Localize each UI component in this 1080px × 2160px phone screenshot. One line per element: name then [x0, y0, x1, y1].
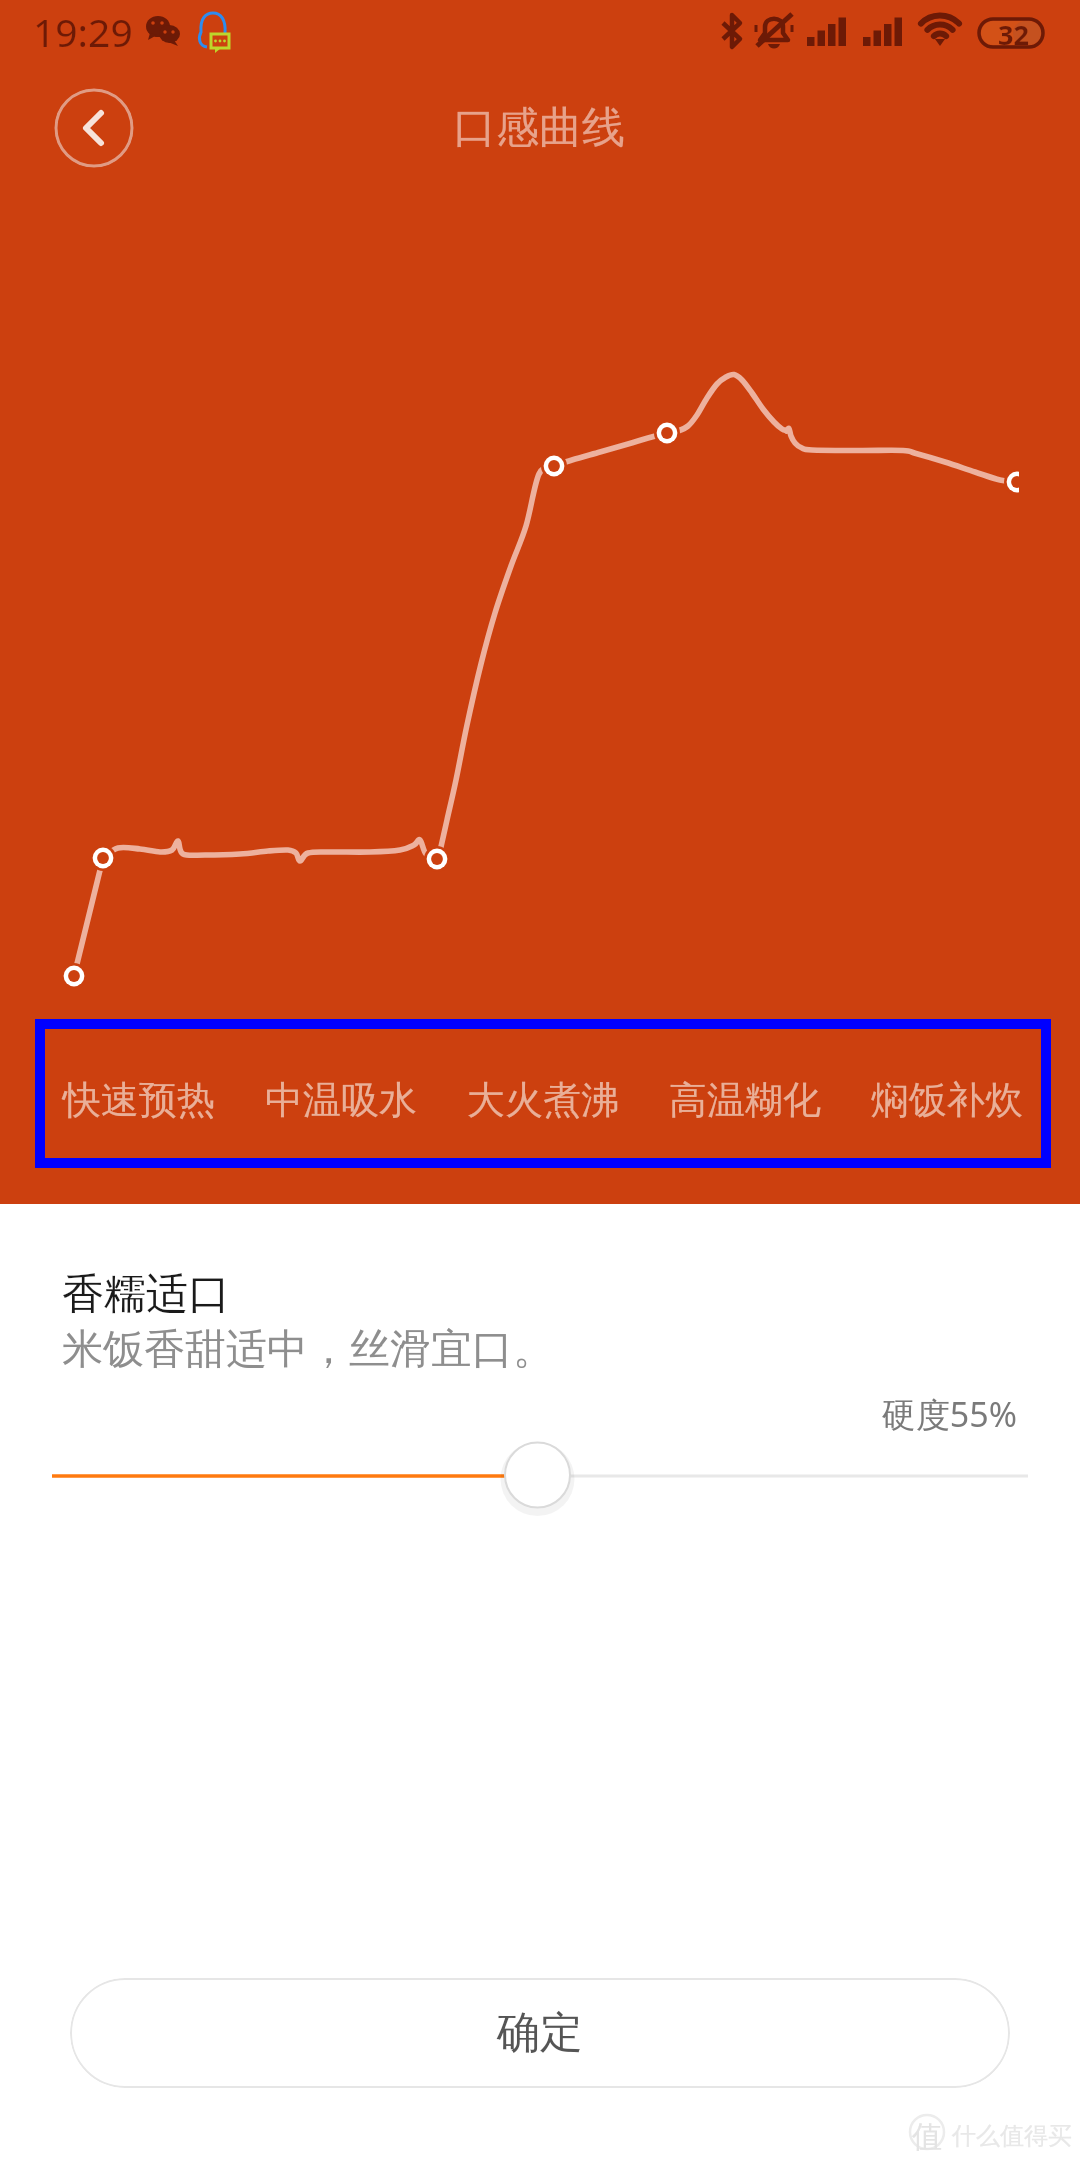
staticText: 什么值得买 — [952, 2121, 1072, 2151]
staticText: 值 — [912, 2118, 942, 2156]
staticText: 19:29 — [33, 5, 133, 58]
staticText: 确定 — [497, 2006, 583, 2060]
button[interactable]: 大火煮沸 — [442, 1072, 644, 1128]
staticText: 32 — [998, 16, 1029, 53]
staticText: 中温吸水 — [265, 1076, 417, 1124]
staticText: 高温糊化 — [669, 1076, 821, 1124]
button[interactable]: Hardness slider — [0, 1435, 1080, 1515]
button[interactable]: 确定 — [70, 1978, 1010, 2088]
staticText: 米饭香甜适中，丝滑宜口。 — [62, 1324, 554, 1376]
staticText: 香糯适口 — [62, 1268, 230, 1321]
staticText: 焖饭补炊 — [871, 1076, 1023, 1124]
button[interactable]: 高温糊化 — [644, 1072, 846, 1128]
staticText: 快速预热 — [63, 1076, 215, 1124]
staticText: 大火煮沸 — [467, 1076, 619, 1124]
button[interactable]: 中温吸水 — [240, 1072, 442, 1128]
button[interactable]: Back — [54, 88, 134, 168]
button[interactable]: 快速预热 — [38, 1072, 240, 1128]
staticText: 硬度55% — [0, 1391, 1017, 1437]
button[interactable]: 焖饭补炊 — [846, 1072, 1048, 1128]
staticText: 口感曲线 — [453, 101, 625, 155]
